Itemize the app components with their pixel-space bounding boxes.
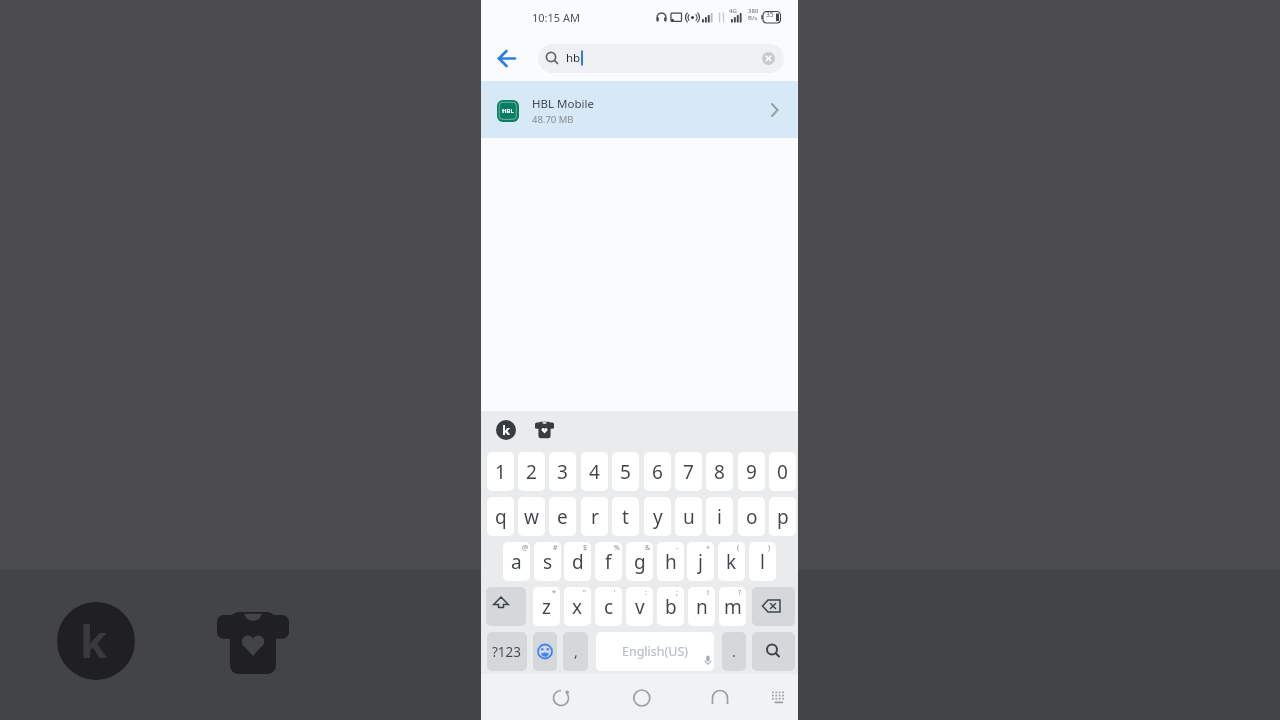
button[interactable]: . [722, 632, 746, 671]
staticText: a [511, 549, 522, 575]
button[interactable]: 5 [612, 452, 639, 491]
staticText: + [706, 543, 711, 553]
staticText: 6 [652, 459, 663, 485]
staticText: , [574, 642, 578, 661]
staticText: c [604, 594, 614, 620]
staticText: 3 [557, 459, 568, 485]
staticText: 4G [729, 7, 737, 15]
button[interactable]: l [749, 542, 776, 581]
staticText: i [717, 504, 722, 530]
button[interactable] [752, 587, 795, 626]
staticText: ) [768, 543, 771, 553]
button[interactable]: 1 [487, 452, 514, 491]
staticText: f [605, 549, 612, 575]
button[interactable] [533, 632, 557, 671]
staticText: s [543, 549, 553, 575]
button[interactable]: n [688, 587, 715, 626]
button[interactable]: u [675, 497, 702, 536]
staticText: 5 [620, 459, 631, 485]
button[interactable]: z [533, 587, 560, 626]
button[interactable] [702, 680, 738, 716]
staticText: ( [737, 543, 740, 553]
button[interactable]: v [626, 587, 653, 626]
staticText: 7 [683, 459, 694, 485]
button[interactable]: m [719, 587, 746, 626]
button[interactable]: p [769, 497, 796, 536]
staticText: b [665, 594, 677, 620]
button[interactable]: 9 [738, 452, 765, 491]
button[interactable] [493, 44, 527, 74]
button[interactable]: a [503, 542, 530, 581]
button[interactable]: 6 [644, 452, 671, 491]
staticText: & [645, 543, 651, 553]
button[interactable]: c [595, 587, 622, 626]
staticText: 10:15 AM [532, 10, 580, 25]
staticText: t [622, 504, 629, 530]
staticText: h [665, 549, 677, 575]
button[interactable]: r [581, 497, 608, 536]
button[interactable]: x [564, 587, 591, 626]
button[interactable]: o [738, 497, 765, 536]
staticText: 48.70 MB [532, 113, 574, 126]
button[interactable]: , [563, 632, 588, 671]
button[interactable]: i [706, 497, 733, 536]
staticText: . [732, 642, 736, 661]
staticText: $ [583, 543, 588, 553]
button[interactable] [534, 420, 555, 439]
button[interactable]: 2 [518, 452, 545, 491]
button[interactable]: q [487, 497, 514, 536]
button[interactable]: 3 [549, 452, 576, 491]
staticText: 9 [746, 459, 757, 485]
button[interactable]: k [718, 542, 745, 581]
button[interactable]: b [657, 587, 684, 626]
staticText: y [653, 504, 663, 530]
staticText: 380 [748, 7, 759, 15]
button[interactable]: 4 [581, 452, 608, 491]
staticText: j [698, 549, 703, 575]
button[interactable]: f [595, 542, 622, 581]
button[interactable] [486, 587, 526, 626]
button[interactable]: y [644, 497, 671, 536]
staticText: g [634, 549, 646, 575]
button[interactable]: j [687, 542, 714, 581]
button[interactable]: s [534, 542, 561, 581]
staticText: : [645, 588, 647, 598]
button[interactable] [481, 81, 798, 138]
button[interactable]: t [612, 497, 639, 536]
staticText: HBL Mobile [532, 96, 594, 112]
staticText: @ [522, 543, 529, 553]
staticText: B/s [748, 14, 758, 22]
staticText: ! [707, 588, 709, 598]
staticText: ; [676, 588, 678, 598]
button[interactable]: k [496, 420, 516, 440]
button[interactable]: w [518, 497, 545, 536]
button[interactable] [624, 680, 660, 716]
button[interactable] [543, 680, 579, 716]
staticText: e [557, 504, 568, 530]
button[interactable] [761, 680, 797, 716]
button[interactable]: 8 [706, 452, 733, 491]
button[interactable] [538, 44, 784, 73]
staticText: 4 [589, 459, 600, 485]
staticText: q [495, 504, 507, 530]
button[interactable]: 7 [675, 452, 702, 491]
button[interactable]: 0 [769, 452, 796, 491]
button[interactable]: g [626, 542, 653, 581]
button[interactable]: ?123 [487, 632, 527, 671]
button[interactable]: d [564, 542, 591, 581]
button[interactable]: English(US) [596, 632, 714, 671]
staticText: p [777, 504, 789, 530]
staticText: English(US) [622, 643, 689, 660]
staticText: u [683, 504, 695, 530]
staticText: z [542, 594, 551, 620]
button[interactable]: e [549, 497, 576, 536]
staticText: 8 [714, 459, 725, 485]
staticText: 0 [777, 459, 788, 485]
staticText: m [724, 594, 742, 620]
button[interactable]: h [657, 542, 684, 581]
button[interactable] [752, 632, 795, 671]
staticText: n [696, 594, 708, 620]
staticText: d [572, 549, 584, 575]
staticText: ? [738, 588, 742, 598]
staticText: v [635, 594, 645, 620]
